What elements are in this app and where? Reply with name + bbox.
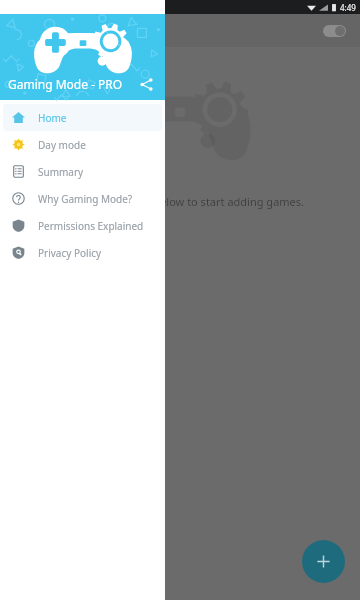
- staticText: 4:49: [340, 2, 356, 13]
- button[interactable]: Summary: [3, 158, 162, 185]
- staticText: Summary: [38, 165, 84, 179]
- staticText: Gaming Mode - PRO: [8, 76, 123, 92]
- staticText: Privacy Policy: [38, 246, 102, 260]
- button[interactable]: Day mode: [3, 131, 162, 158]
- staticText: Home: [38, 111, 67, 125]
- staticText: Why Gaming Mode?: [38, 192, 133, 206]
- button[interactable]: Home: [3, 104, 162, 131]
- button[interactable]: Toggle gaming mode: [323, 25, 346, 37]
- button[interactable]: Permissions Explained: [3, 212, 162, 239]
- button[interactable]: Why Gaming Mode?: [3, 185, 162, 212]
- staticText: Day mode: [38, 138, 86, 152]
- button[interactable]: Privacy Policy: [3, 239, 162, 266]
- staticText: Press the + button below to start adding…: [18, 194, 342, 209]
- button[interactable]: Share: [135, 73, 157, 95]
- button[interactable]: Add game: [302, 540, 345, 583]
- staticText: Permissions Explained: [38, 219, 144, 233]
